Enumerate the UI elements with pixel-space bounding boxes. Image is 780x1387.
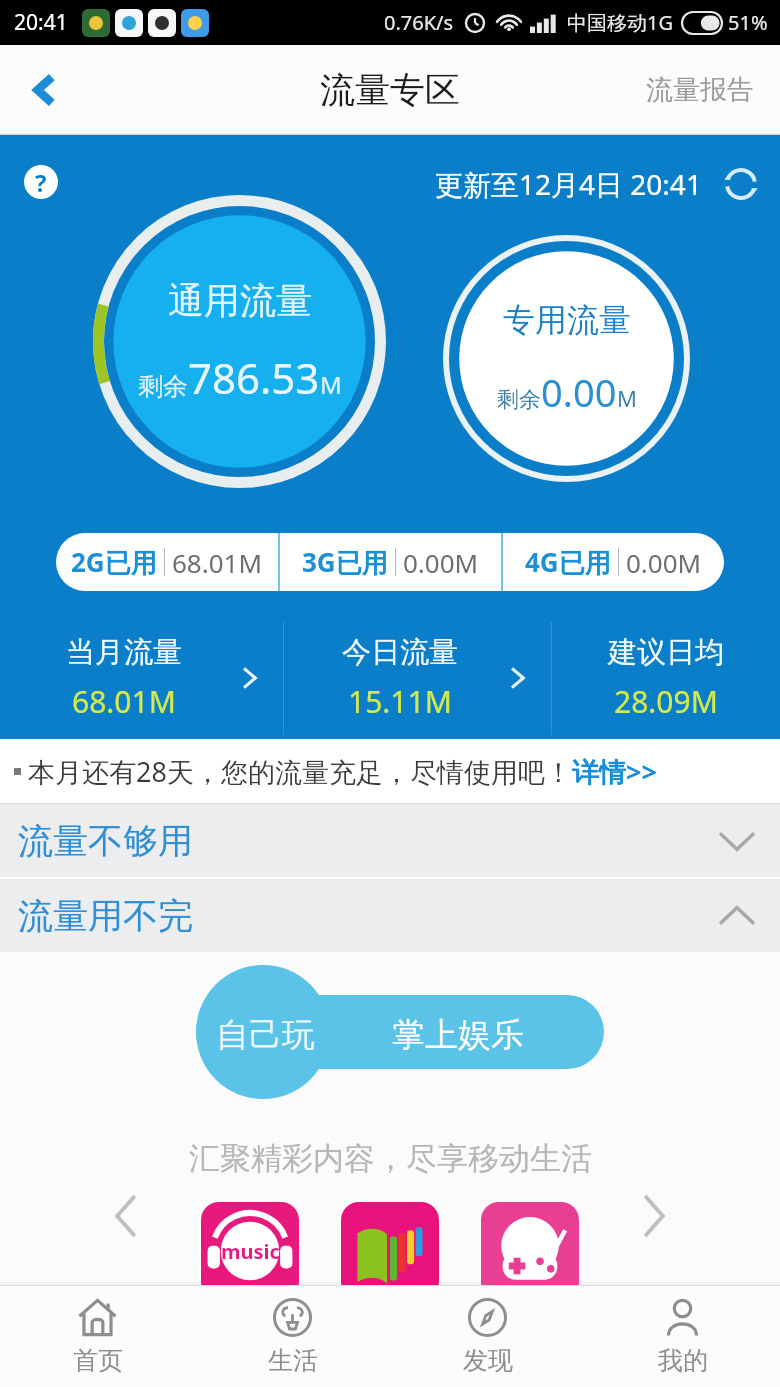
staticText: 流量专区	[320, 68, 460, 112]
staticText: 68.01M	[172, 545, 263, 580]
staticText: ?	[35, 166, 47, 199]
staticText: 流量报告	[646, 73, 754, 107]
staticText: 51%	[728, 9, 768, 36]
staticText: 自己玩	[216, 1014, 315, 1056]
staticText: 发现	[463, 1345, 513, 1376]
button[interactable]: Music app	[201, 1202, 299, 1300]
button[interactable]: Previous	[98, 1188, 154, 1244]
staticText: 掌上娱乐	[392, 1014, 524, 1056]
staticText: 中国移动1G	[567, 9, 673, 36]
staticText: 28.09M	[614, 681, 718, 722]
staticText: 生活	[268, 1345, 318, 1376]
button[interactable]: 当月流量	[0, 619, 284, 737]
staticText: 流量用不完	[18, 894, 193, 938]
staticText: 详情>>	[572, 753, 657, 790]
button[interactable]	[196, 965, 330, 1099]
staticText: 今日流量	[342, 634, 458, 671]
staticText: 4G已用	[525, 544, 611, 580]
staticText: 68.01M	[72, 681, 176, 722]
staticText: 0.00M	[403, 545, 479, 580]
staticText: 汇聚精彩内容，尽享移动生活	[189, 1139, 592, 1178]
button[interactable]: 流量用不完	[0, 879, 780, 952]
button[interactable]: Back	[14, 59, 76, 121]
button[interactable]: 首页	[0, 1286, 195, 1387]
staticText: music	[221, 1238, 280, 1265]
button[interactable]: Next	[626, 1188, 682, 1244]
button[interactable]: Reader app	[341, 1202, 439, 1300]
staticText: 当月流量	[66, 634, 182, 671]
staticText: 0.00M	[626, 545, 702, 580]
button[interactable]: 专用流量	[443, 235, 690, 482]
staticText: 剩余	[497, 386, 541, 414]
staticText: 786.53	[188, 349, 320, 406]
staticText: 流量不够用	[18, 819, 193, 863]
staticText: 本月还有28天，您的流量充足，尽情使用吧！	[28, 753, 572, 790]
staticText: 0.00	[541, 366, 617, 418]
staticText: 建议日均	[608, 634, 724, 671]
button[interactable]: Help	[18, 159, 64, 205]
button[interactable]: Refresh	[718, 161, 764, 207]
button[interactable]: 2G已用	[56, 533, 724, 591]
button[interactable]: 生活	[195, 1286, 390, 1387]
staticText: 更新至12月4日 20:41	[435, 165, 702, 203]
staticText: 2G已用	[71, 544, 157, 580]
button[interactable]: 建议日均	[552, 619, 780, 737]
button[interactable]: 我的	[585, 1286, 780, 1387]
staticText: 剩余	[138, 371, 188, 402]
button[interactable]: 流量报告	[640, 63, 760, 117]
button[interactable]: 发现	[390, 1286, 585, 1387]
staticText: 专用流量	[503, 300, 631, 340]
button[interactable]: Game app	[481, 1202, 579, 1300]
staticText: 3G已用	[302, 544, 388, 580]
staticText: 20:41	[14, 8, 68, 37]
button[interactable]	[196, 995, 604, 1069]
staticText: 15.11M	[348, 681, 452, 722]
staticText: 我的	[658, 1345, 708, 1376]
staticText: 0.76K/s	[384, 9, 454, 36]
button[interactable]: 今日流量	[284, 619, 552, 737]
staticText: 通用流量	[168, 278, 312, 323]
button[interactable]: 流量不够用	[0, 804, 780, 877]
button[interactable]: 通用流量	[93, 195, 386, 488]
staticText: M	[320, 368, 342, 401]
staticText: M	[617, 383, 637, 413]
button[interactable]: 本月还有28天，您的流量充足，尽情使用吧！	[14, 739, 764, 803]
staticText: 首页	[73, 1345, 123, 1376]
